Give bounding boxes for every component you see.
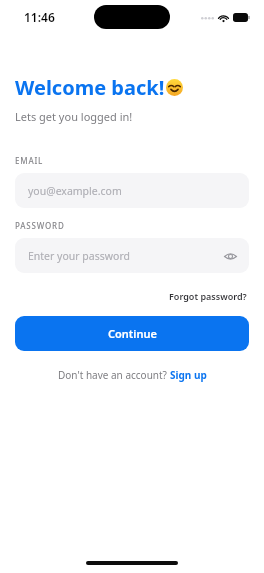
staticText: 11:46: [24, 9, 55, 25]
button[interactable]: Sign up: [170, 368, 207, 382]
staticText: Continue: [108, 326, 157, 341]
staticText: Lets get you logged in!: [15, 109, 133, 124]
button[interactable]: Enter your password: [15, 238, 249, 273]
button[interactable]: Forgot password?: [167, 288, 249, 304]
staticText: PASSWORD: [15, 220, 65, 231]
staticText: Forgot password?: [169, 290, 247, 302]
staticText: you@example.com: [28, 184, 122, 198]
staticText: Sign up: [170, 368, 207, 382]
staticText: Don't have an account?: [58, 368, 170, 382]
staticText: Welcome back!: [15, 74, 165, 101]
staticText: Enter your password: [28, 249, 130, 263]
button[interactable]: you@example.com: [15, 173, 249, 208]
staticText: EMAIL: [15, 155, 44, 166]
button[interactable]: Continue: [15, 316, 249, 351]
button[interactable]: Show password: [221, 247, 239, 265]
